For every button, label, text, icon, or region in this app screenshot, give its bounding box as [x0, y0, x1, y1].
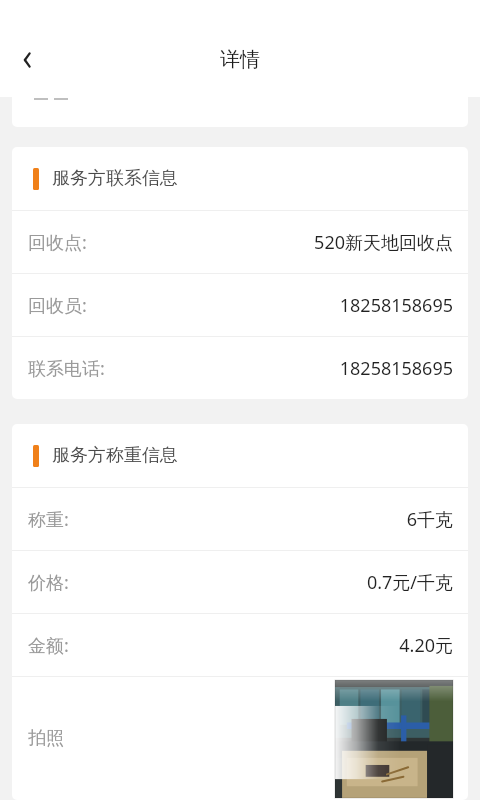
staticText: 拍照 — [28, 727, 64, 750]
staticText: 称重: — [28, 507, 69, 532]
staticText: 18258158695 — [339, 293, 453, 318]
button[interactable]: 服务方称重信息 — [12, 424, 468, 487]
staticText: 0.7元/千克 — [366, 570, 453, 595]
button[interactable]: Photo — [335, 680, 453, 798]
staticText: 回收员: — [28, 293, 87, 318]
staticText: 4.20元 — [399, 633, 453, 658]
staticText: 详情 — [220, 47, 260, 72]
button[interactable]: 价格: — [12, 551, 468, 613]
button[interactable]: Back — [0, 33, 54, 87]
staticText: 服务方称重信息 — [52, 444, 178, 467]
button[interactable]: 回收点: — [12, 211, 468, 273]
staticText: 金额: — [28, 633, 69, 658]
staticText: 520新天地回收点 — [314, 230, 453, 255]
staticText: 18258158695 — [339, 356, 453, 381]
staticText: 回收点: — [28, 230, 87, 255]
button[interactable]: 回收员: — [12, 274, 468, 336]
button[interactable]: 称重: — [12, 488, 468, 550]
staticText: 联系电话: — [28, 356, 105, 381]
staticText: 6千克 — [406, 507, 453, 532]
button[interactable]: 金额: — [12, 614, 468, 676]
staticText: 价格: — [28, 570, 69, 595]
button[interactable]: 联系电话: — [12, 337, 468, 399]
button[interactable]: 服务方联系信息 — [12, 147, 468, 210]
staticText: 服务方联系信息 — [52, 167, 178, 190]
button[interactable]: 拍照 — [12, 677, 468, 800]
